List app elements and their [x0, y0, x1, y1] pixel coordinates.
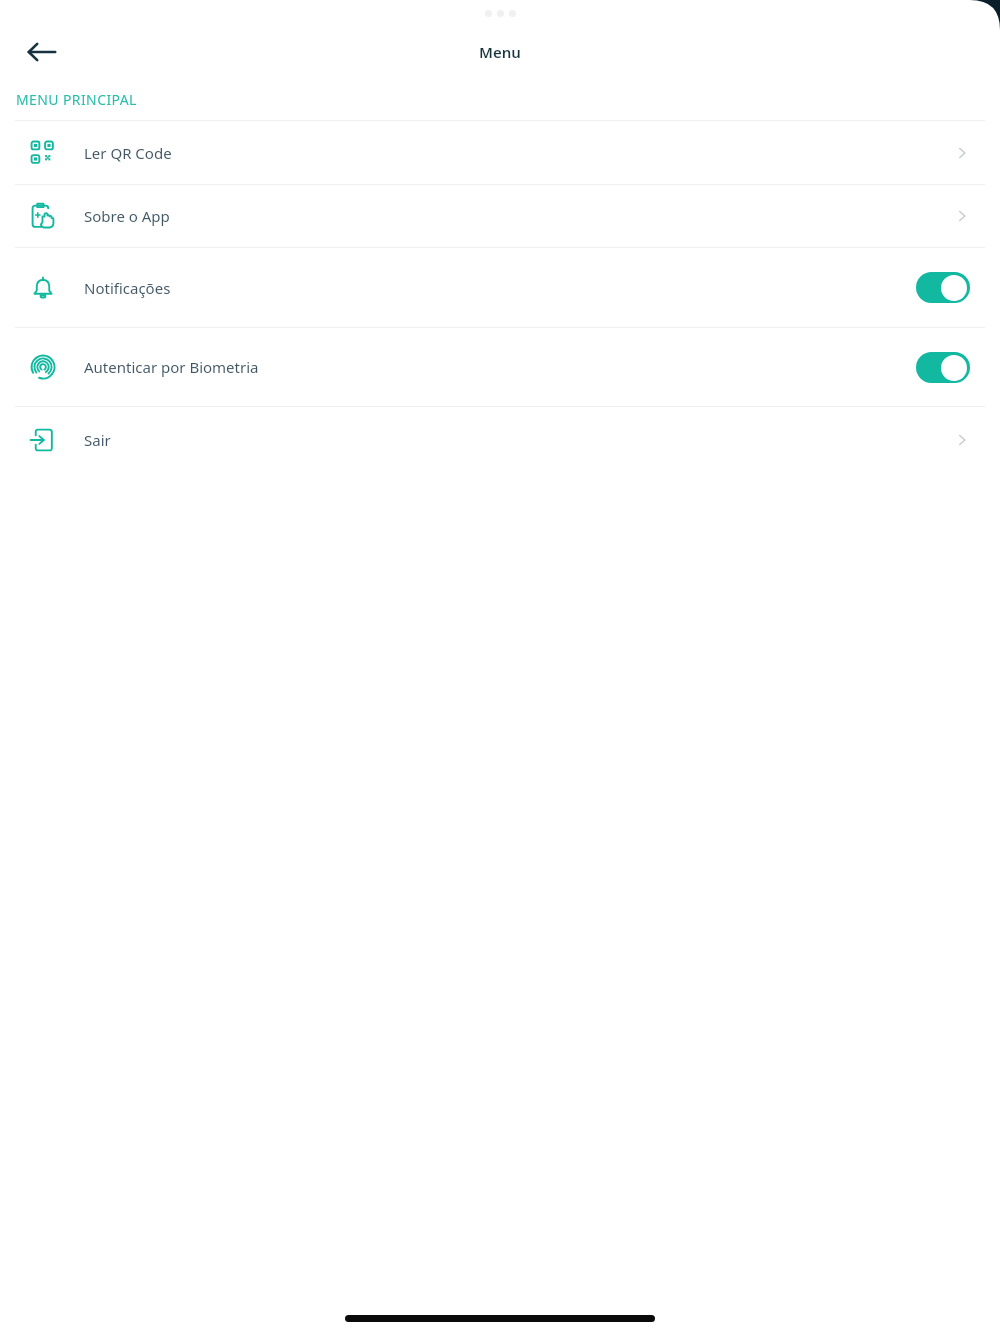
button[interactable]: Ler QR Code [0, 121, 1000, 184]
button[interactable]: Sair [0, 407, 1000, 473]
staticText: Notificações [84, 278, 171, 298]
button[interactable]: Back [16, 26, 68, 78]
staticText: Menu [479, 42, 521, 62]
staticText: Sobre o App [84, 206, 170, 226]
staticText: Ler QR Code [84, 143, 172, 163]
button[interactable]: Sobre o App [0, 185, 1000, 247]
button[interactable]: Autenticar por Biometria [0, 328, 1000, 406]
staticText: MENU PRINCIPAL [16, 90, 137, 109]
staticText: Sair [84, 430, 111, 450]
staticText: Autenticar por Biometria [84, 357, 259, 377]
button[interactable]: Notificações [0, 248, 1000, 327]
button[interactable]: Toggle [916, 352, 970, 383]
button[interactable]: Toggle [916, 272, 970, 303]
